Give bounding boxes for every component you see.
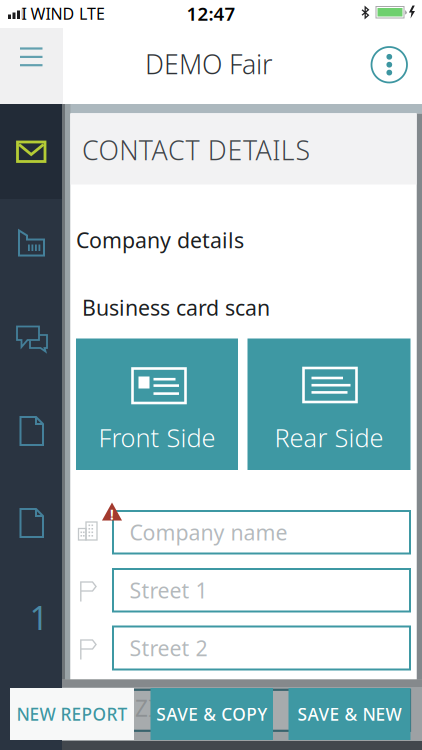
staticText: ZIP [135,693,170,723]
staticText: ! [110,506,114,523]
staticText: NEW REPORT [16,702,127,725]
staticText: DEMO Fair [145,46,273,82]
staticText: CONTACT DETAILS [82,132,310,168]
staticText: Street 1 [129,576,207,604]
staticText: LTE [79,3,105,24]
staticText: Front Side [98,421,215,454]
staticText: SAVE & NEW [297,702,401,725]
staticText: Business card scan [82,293,270,322]
staticText: Street 2 [129,634,207,662]
staticText: SAVE & COPY [156,702,267,725]
staticText: 1 [29,595,48,639]
staticText: Company name [129,518,287,546]
staticText: I WIND [21,3,74,24]
staticText: 12:47 [186,1,235,26]
staticText: Rear Side [274,421,383,454]
staticText: Company details [76,226,244,254]
